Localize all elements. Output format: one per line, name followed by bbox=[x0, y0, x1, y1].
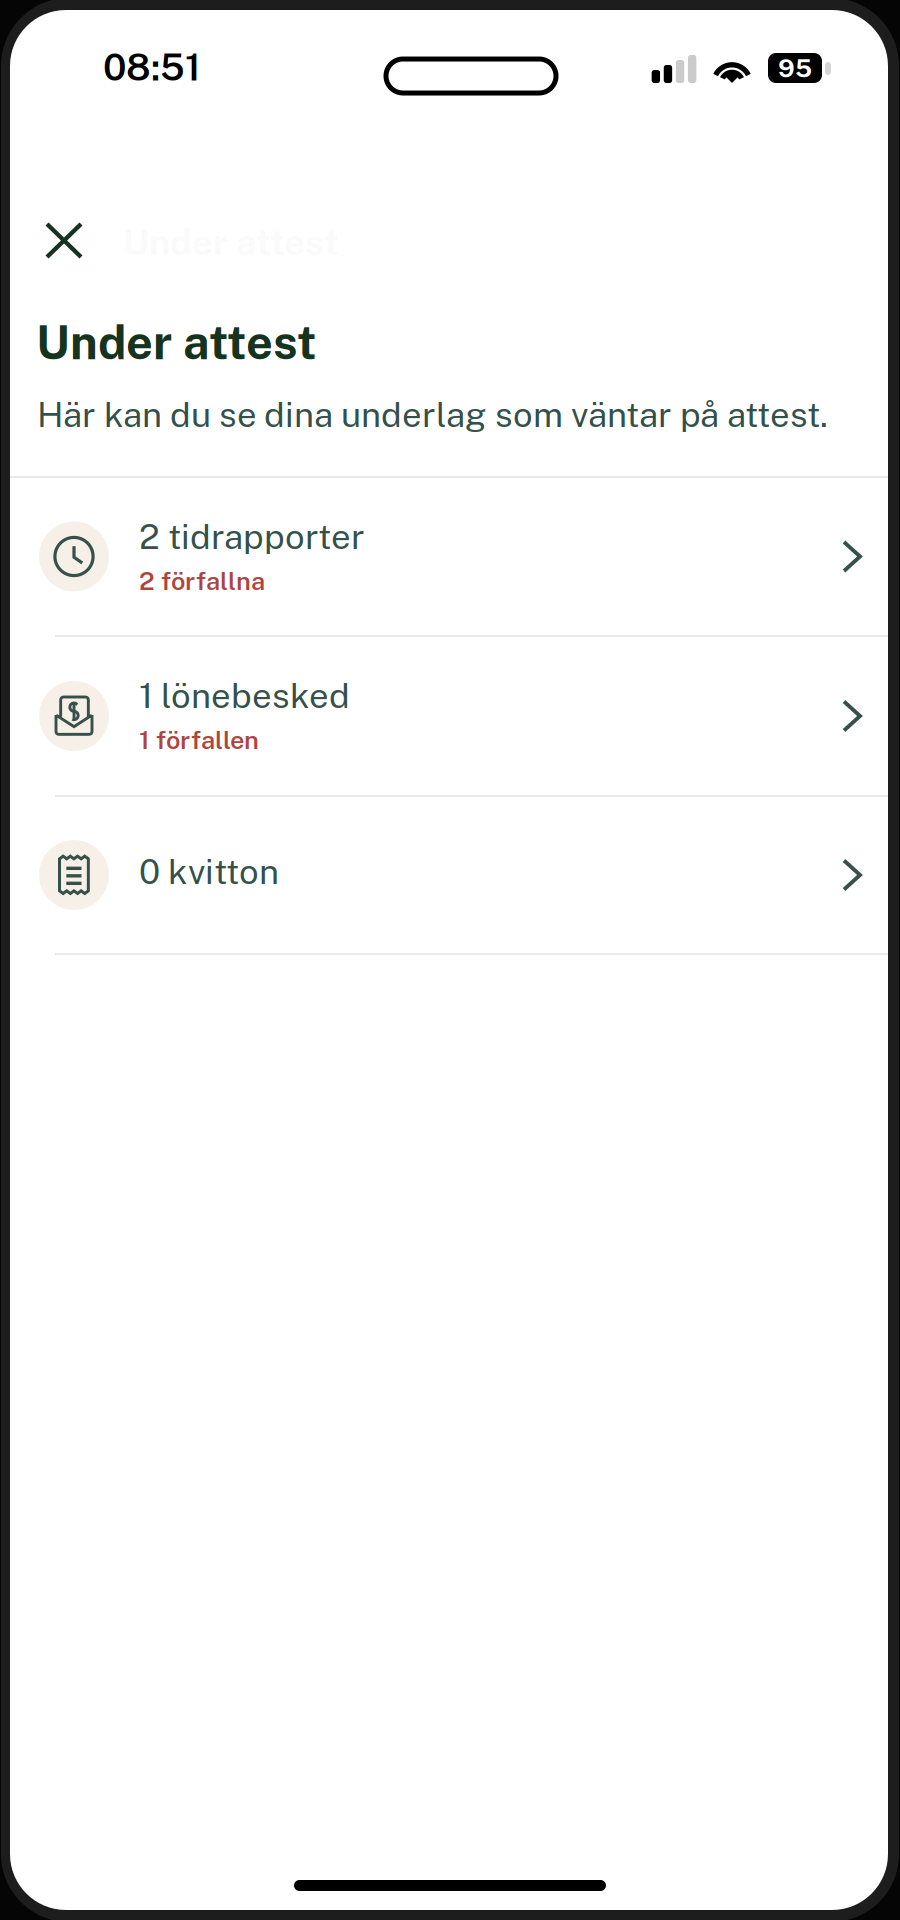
staticText: 0 kvitton bbox=[139, 851, 279, 892]
button[interactable]: 2 tidrapporter bbox=[0, 0, 900, 1920]
staticText: 2 tidrapporter bbox=[139, 516, 365, 557]
staticText: 95 bbox=[778, 53, 812, 83]
staticText: 08:51 bbox=[103, 45, 201, 89]
button[interactable]: 1 lönebesked bbox=[0, 0, 900, 1920]
staticText: 1 förfallen bbox=[139, 725, 259, 755]
button[interactable]: Stäng bbox=[23, 200, 105, 281]
staticText: 2 förfallna bbox=[139, 566, 265, 596]
staticText: Under attest bbox=[36, 315, 316, 370]
staticText: 1 lönebesked bbox=[139, 675, 350, 716]
button[interactable]: 0 kvitton bbox=[0, 0, 900, 1920]
staticText: Här kan du se dina underlag som väntar p… bbox=[37, 394, 828, 435]
